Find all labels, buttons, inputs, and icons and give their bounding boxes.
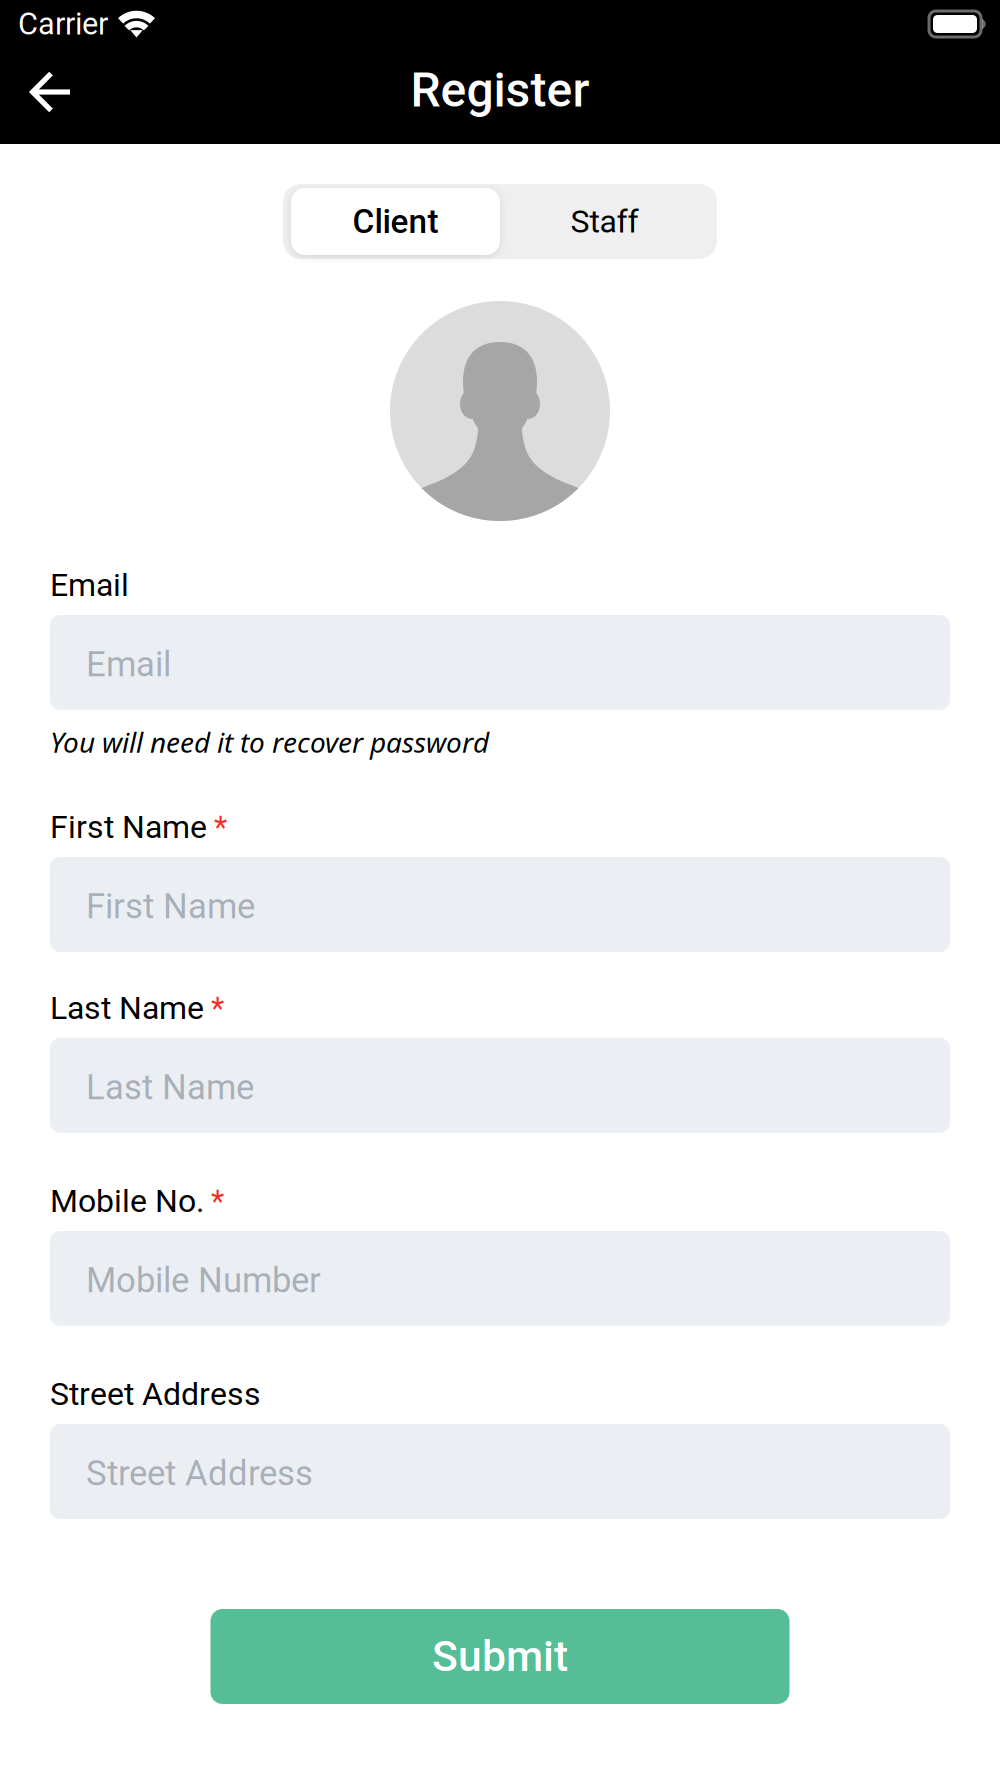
staticText: Mobile Number [86, 1260, 321, 1301]
staticText: Staff [570, 203, 638, 240]
staticText: * [211, 1183, 224, 1219]
staticText: Email [86, 644, 171, 685]
staticText: Street Address [50, 1375, 261, 1413]
staticText: Submit [432, 1631, 568, 1681]
button[interactable]: Back [13, 54, 89, 130]
staticText: First Name [50, 808, 207, 846]
staticText: Last Name [50, 989, 204, 1027]
staticText: Register [410, 62, 589, 118]
staticText: Carrier [18, 6, 108, 42]
staticText: * [211, 990, 224, 1026]
staticText: Email [50, 566, 129, 604]
staticText: First Name [86, 886, 255, 927]
staticText: You will need it to recover password [50, 723, 489, 761]
staticText: Mobile No. [50, 1182, 204, 1220]
button[interactable]: Client [291, 188, 500, 255]
staticText: Client [352, 202, 438, 241]
button[interactable]: Staff [500, 188, 709, 255]
button[interactable]: Submit [210, 1609, 789, 1704]
staticText: * [214, 809, 227, 845]
staticText: Street Address [86, 1453, 313, 1494]
staticText: Last Name [86, 1067, 254, 1108]
